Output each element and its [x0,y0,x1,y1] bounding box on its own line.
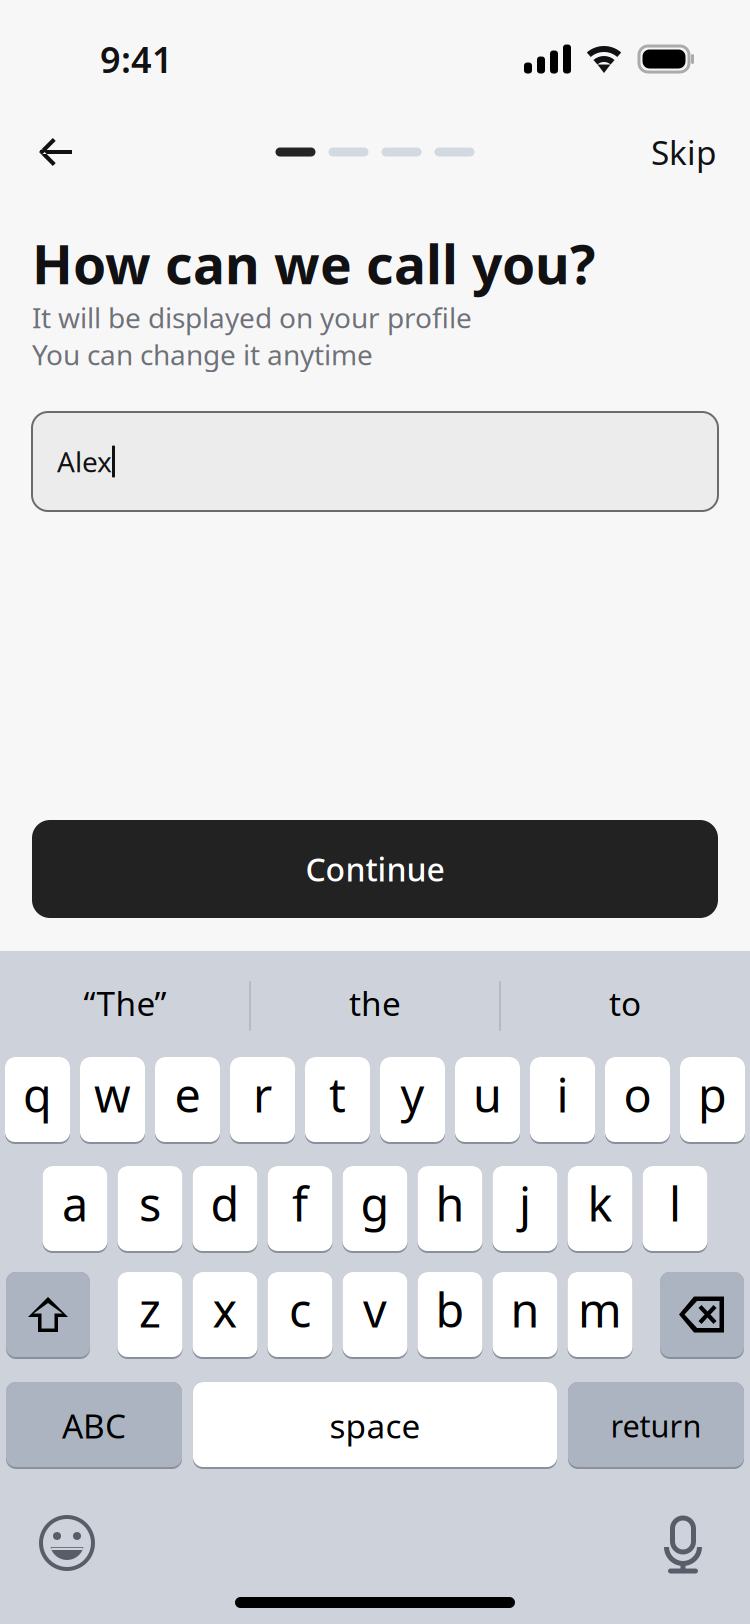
button[interactable]: h [417,1166,482,1253]
button[interactable]: return [568,1382,744,1469]
button[interactable]: p [680,1057,745,1144]
staticText: Alex [57,443,112,480]
button[interactable]: space [193,1382,557,1469]
staticText: o [623,1063,651,1125]
button[interactable]: m [567,1272,632,1359]
staticText: d [210,1172,239,1234]
staticText: z [139,1278,161,1340]
staticText: to [609,981,641,1025]
staticText: j [519,1172,531,1234]
button[interactable]: c [267,1272,332,1359]
button[interactable]: y [380,1057,445,1144]
button[interactable]: f [267,1166,332,1253]
button[interactable]: n [492,1272,557,1359]
button[interactable]: q [5,1057,70,1144]
staticText: b [435,1278,464,1340]
button[interactable]: r [230,1057,295,1144]
staticText: s [139,1172,161,1234]
staticText: Continue [305,848,444,890]
staticText: y [400,1063,424,1125]
button[interactable]: “The” [0,957,250,1055]
staticText: i [556,1063,568,1125]
staticText: w [94,1063,131,1125]
staticText: u [473,1063,502,1125]
staticText: q [23,1063,52,1125]
button[interactable]: Dictate [649,1509,717,1577]
button[interactable]: Alex [32,412,718,511]
button[interactable]: a [42,1166,107,1253]
button[interactable]: Emoji keyboard [33,1509,101,1577]
staticText: a [62,1172,88,1234]
button[interactable]: d [192,1166,257,1253]
staticText: 9:41 [100,35,173,83]
button[interactable]: o [605,1057,670,1144]
button[interactable]: ABC [6,1382,182,1469]
button[interactable]: to [500,957,750,1055]
staticText: f [292,1172,308,1234]
staticText: c [289,1278,311,1340]
button[interactable]: v [342,1272,407,1359]
button[interactable]: i [530,1057,595,1144]
button[interactable]: Continue [32,820,718,918]
staticText: space [329,1403,420,1448]
button[interactable]: k [567,1166,632,1253]
staticText: You can change it anytime [32,336,373,373]
staticText: It will be displayed on your profile [32,299,472,336]
button[interactable]: Delete [660,1272,744,1359]
button[interactable]: w [80,1057,145,1144]
button[interactable]: Shift [6,1272,90,1359]
staticText: “The” [83,981,166,1025]
staticText: m [578,1278,622,1340]
staticText: r [253,1063,272,1125]
button[interactable]: e [155,1057,220,1144]
button[interactable]: g [342,1166,407,1253]
staticText: v [363,1278,387,1340]
staticText: l [669,1172,681,1234]
staticText: n [510,1278,539,1340]
button[interactable]: z [117,1272,182,1359]
button[interactable]: t [305,1057,370,1144]
staticText: e [174,1063,200,1125]
staticText: ABC [62,1403,126,1448]
staticText: x [212,1278,237,1340]
staticText: k [587,1172,612,1234]
button[interactable]: j [492,1166,557,1253]
button[interactable]: Skip [621,124,750,180]
button[interactable]: b [417,1272,482,1359]
button[interactable]: Back [0,124,112,180]
button[interactable]: u [455,1057,520,1144]
staticText: return [610,1405,701,1446]
staticText: the [349,981,401,1025]
staticText: h [435,1172,464,1234]
button[interactable]: s [117,1166,182,1253]
button[interactable]: the [250,957,500,1055]
staticText: t [329,1063,346,1125]
staticText: Skip [651,130,717,174]
button[interactable]: l [642,1166,707,1253]
staticText: g [360,1172,389,1234]
staticText: p [698,1063,727,1125]
button[interactable]: x [192,1272,257,1359]
staticText: How can we call you? [32,228,595,299]
